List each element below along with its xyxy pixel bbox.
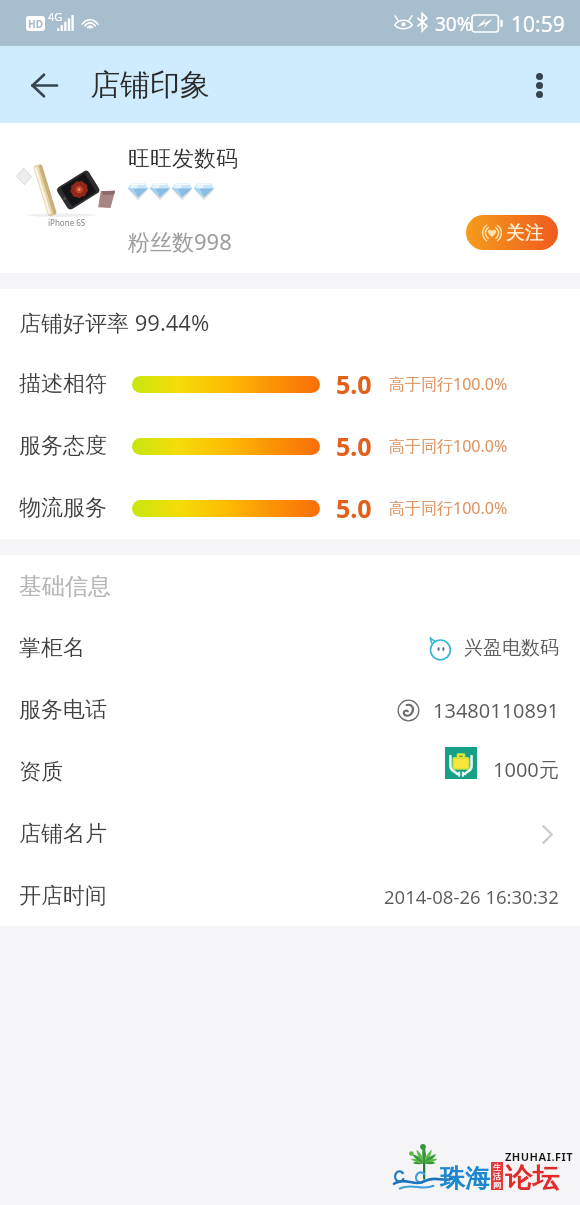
- staticText: 5.0: [336, 429, 372, 463]
- staticText: 5.0: [336, 491, 372, 525]
- staticText: 服务电话: [19, 696, 107, 724]
- button[interactable]: 资质: [0, 741, 580, 803]
- staticText: 店铺印象: [90, 66, 210, 104]
- staticText: 粉丝数998: [128, 226, 232, 256]
- staticText: 1000元: [493, 756, 559, 783]
- staticText: 13480110891: [433, 697, 559, 724]
- staticText: 资质: [19, 758, 63, 786]
- staticText: 10:59: [511, 10, 565, 39]
- staticText: 旺旺发数码: [128, 145, 238, 173]
- staticText: 基础信息: [19, 572, 111, 601]
- other: Open shop card: [535, 822, 559, 846]
- staticText: 高于同行100.0%: [389, 373, 508, 395]
- staticText: 掌柜名: [19, 634, 85, 662]
- staticText: 30%: [435, 11, 473, 37]
- button[interactable]: 店铺名片: [0, 803, 580, 865]
- staticText: 高于同行100.0%: [389, 497, 508, 519]
- staticText: ZHUHAI.FIT: [505, 1149, 574, 1164]
- staticText: 珠海: [440, 1163, 490, 1194]
- staticText: 4G: [48, 9, 63, 24]
- staticText: 论坛: [505, 1161, 559, 1195]
- staticText: iPhone 6S: [48, 217, 86, 228]
- staticText: 高于同行100.0%: [389, 435, 508, 457]
- staticText: 物流服务: [19, 494, 107, 522]
- staticText: 描述相符: [19, 370, 107, 398]
- staticText: 服务态度: [19, 432, 107, 460]
- staticText: 开店时间: [19, 882, 107, 910]
- staticText: 店铺好评率 99.44%: [19, 307, 210, 337]
- staticText: 生 活 网: [493, 1162, 501, 1190]
- staticText: 关注: [506, 221, 544, 245]
- button[interactable]: More options: [515, 61, 563, 109]
- staticText: 店铺名片: [19, 820, 107, 848]
- staticText: 5.0: [336, 367, 372, 401]
- button[interactable]: 开店时间: [0, 865, 580, 927]
- button[interactable]: 服务电话: [0, 679, 580, 741]
- button[interactable]: 关注: [466, 215, 558, 250]
- button[interactable]: 掌柜名: [0, 617, 580, 679]
- button[interactable]: Back: [20, 61, 68, 109]
- staticText: 兴盈电数码: [464, 636, 559, 660]
- staticText: HD: [28, 17, 43, 31]
- staticText: 2014-08-26 16:30:32: [384, 884, 559, 909]
